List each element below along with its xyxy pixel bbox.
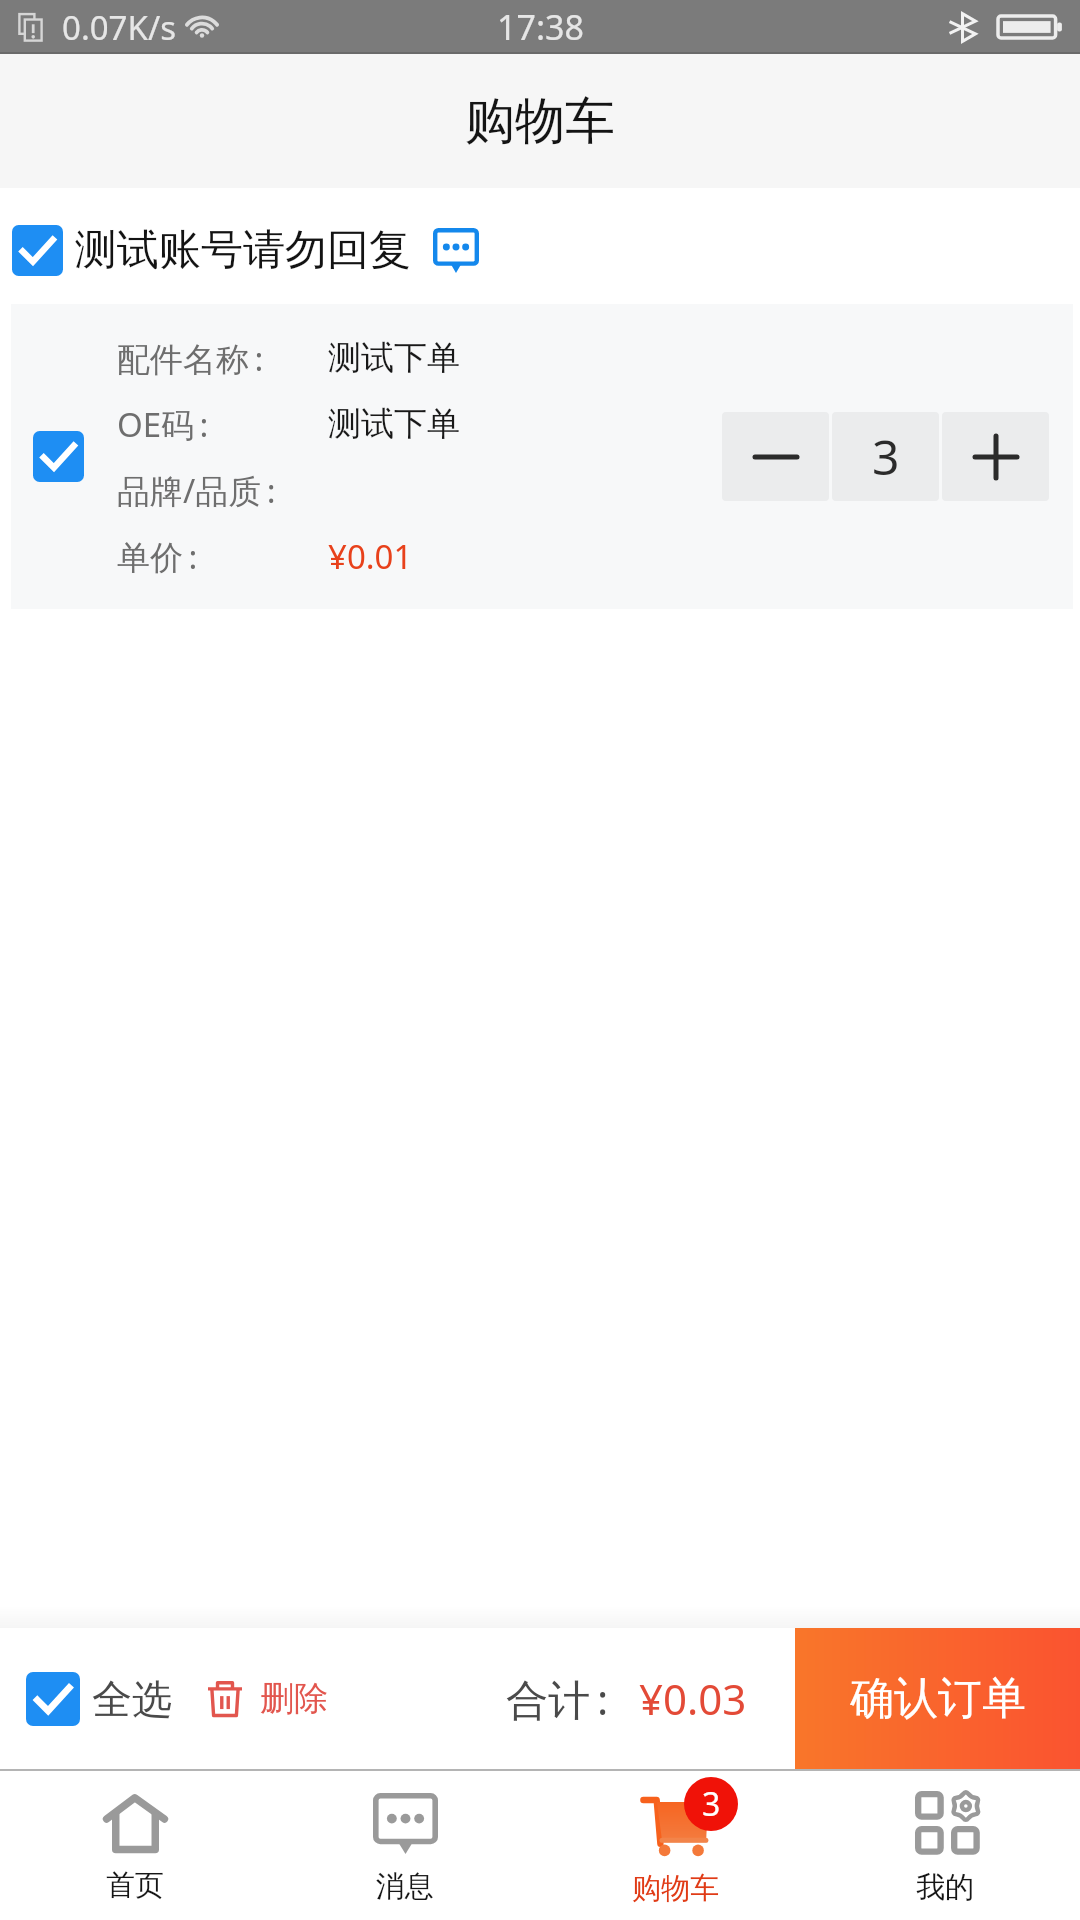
button[interactable]: Select this item xyxy=(33,431,84,482)
staticText: 购物车 xyxy=(465,90,615,153)
button[interactable]: Select all items from this shop xyxy=(12,225,63,276)
staticText: 3 xyxy=(702,1782,721,1826)
staticText: 确认订单 xyxy=(850,1671,1026,1726)
staticText: 17:38 xyxy=(497,4,584,50)
staticText: 首页 xyxy=(106,1867,164,1904)
staticText: ¥0.03 xyxy=(639,1670,747,1727)
staticText: 消息 xyxy=(376,1868,434,1905)
staticText: 购物车 xyxy=(632,1870,719,1907)
staticText: OE码 : xyxy=(117,402,209,447)
button[interactable]: Chat with shop xyxy=(433,228,479,273)
button[interactable]: 删除 xyxy=(208,1665,328,1732)
staticText: 测试账号请勿回复 xyxy=(75,224,411,277)
button[interactable]: 我的 xyxy=(810,1771,1080,1920)
button[interactable]: 确认订单 xyxy=(795,1628,1080,1769)
staticText: 品牌/品质 : xyxy=(117,468,276,513)
staticText: 合计 : xyxy=(506,1670,609,1727)
staticText: 全选 xyxy=(92,1674,172,1724)
staticText: 删除 xyxy=(260,1677,328,1720)
button[interactable]: Increase quantity xyxy=(942,412,1049,501)
staticText: 测试下单 xyxy=(328,403,460,445)
staticText: 3 xyxy=(872,424,900,489)
staticText: ¥0.01 xyxy=(328,534,413,579)
staticText: 测试下单 xyxy=(328,337,460,379)
staticText: 单价 : xyxy=(117,534,198,579)
button[interactable]: 全选 xyxy=(26,1660,172,1738)
staticText: 配件名称 : xyxy=(117,336,264,381)
staticText: 0.07K/s xyxy=(62,5,176,50)
button[interactable]: Decrease quantity xyxy=(722,412,829,501)
staticText: 我的 xyxy=(916,1869,974,1906)
button[interactable]: 3 xyxy=(832,412,939,501)
button[interactable]: 首页 xyxy=(0,1771,270,1920)
button[interactable]: 3 xyxy=(540,1771,810,1920)
button[interactable]: 消息 xyxy=(270,1771,540,1920)
